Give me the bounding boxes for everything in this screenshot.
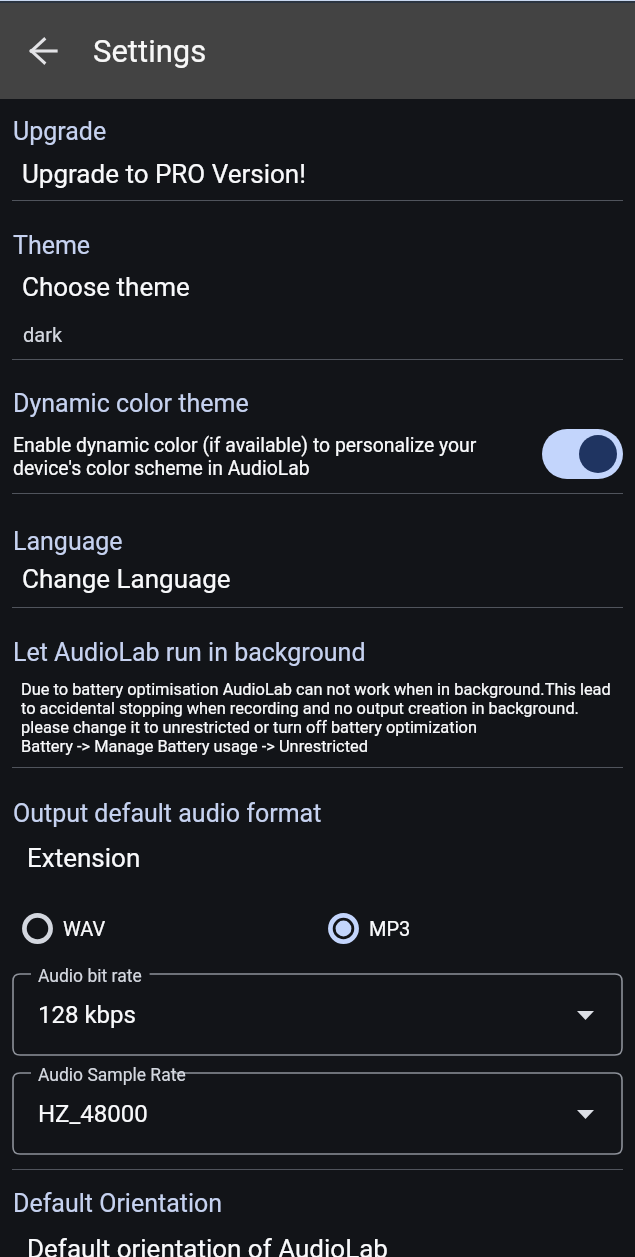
staticText: Enable dynamic color (if available) to p…: [13, 434, 513, 480]
button[interactable]: [0, 265, 635, 355]
button[interactable]: Audio bit rate: [13, 974, 622, 1055]
staticText: Default Orientation: [13, 1189, 223, 1218]
staticText: Extension: [27, 843, 141, 873]
staticText: WAV: [63, 917, 106, 940]
staticText: Change Language: [22, 564, 231, 594]
staticText: dark: [23, 323, 63, 346]
staticText: Default orientation of AudioLab: [27, 1234, 388, 1257]
staticText: Theme: [13, 231, 91, 260]
staticText: MP3: [369, 917, 411, 940]
button[interactable]: [0, 152, 635, 198]
button[interactable]: [0, 560, 635, 606]
staticText: Let AudioLab run in background: [13, 638, 366, 667]
staticText: Settings: [93, 33, 207, 69]
staticText: Upgrade: [13, 117, 107, 146]
button[interactable]: MP3: [318, 906, 518, 951]
staticText: Output default audio format: [13, 799, 322, 828]
staticText: HZ_48000: [38, 1100, 148, 1128]
button[interactable]: Back: [18, 25, 70, 77]
button[interactable]: Audio Sample Rate: [13, 1073, 622, 1154]
staticText: Due to battery optimisation AudioLab can…: [21, 680, 621, 756]
button[interactable]: Dynamic color toggle: [542, 429, 623, 479]
button[interactable]: WAV: [12, 906, 212, 951]
staticText: Audio Sample Rate: [38, 1065, 186, 1086]
staticText: Upgrade to PRO Version!: [22, 159, 306, 189]
button[interactable]: [0, 674, 635, 762]
staticText: Choose theme: [22, 272, 190, 302]
staticText: 128 kbps: [38, 1001, 136, 1029]
staticText: Audio bit rate: [38, 966, 142, 987]
button[interactable]: [0, 425, 635, 487]
staticText: Language: [13, 527, 123, 556]
staticText: Dynamic color theme: [13, 389, 249, 418]
